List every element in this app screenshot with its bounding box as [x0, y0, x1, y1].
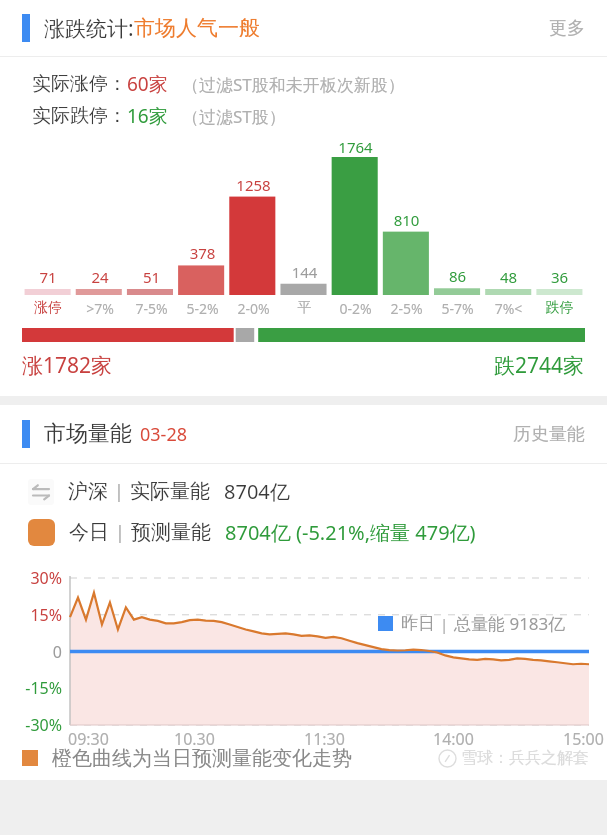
button[interactable]: 涨跌统计:	[0, 0, 607, 56]
staticText: 沪深	[68, 479, 108, 504]
staticText: 16家	[127, 103, 168, 129]
staticText: （过滤ST股和未开板次新股）	[182, 73, 405, 96]
staticText: 36	[534, 267, 585, 287]
button[interactable]: 实际量能图例	[0, 478, 607, 505]
staticText: 5-2%	[177, 299, 228, 318]
staticText: 8704亿 (-5.21%,缩量 479亿)	[225, 519, 476, 546]
staticText: -30%	[0, 714, 62, 736]
staticText: 今日	[69, 520, 109, 545]
staticText: 86	[432, 266, 483, 286]
staticText: 昨日	[401, 613, 435, 634]
staticText: 市场人气一般	[134, 15, 260, 41]
staticText: 8704亿	[224, 478, 290, 505]
staticText: 实际量能	[130, 479, 210, 504]
button[interactable]: 市场量能	[0, 405, 607, 463]
other: 预测量能图例	[28, 519, 55, 546]
staticText: 涨停	[22, 299, 74, 317]
staticText: 48	[483, 267, 534, 287]
button[interactable]: 预测量能图例	[0, 519, 607, 546]
staticText: 11:30	[304, 728, 345, 750]
staticText: 橙色曲线为当日预测量能变化走势	[52, 746, 352, 771]
staticText: 历史量能	[513, 423, 585, 446]
staticText: 跌2744家	[494, 351, 585, 380]
staticText: 0	[0, 641, 62, 663]
staticText: 378	[177, 243, 228, 263]
staticText: 30%	[0, 567, 62, 589]
staticText: 市场量能	[44, 420, 132, 448]
staticText: 60家	[127, 71, 168, 97]
staticText: 09:30	[68, 728, 109, 750]
staticText: 0-2%	[330, 299, 381, 318]
staticText: 5-7%	[432, 299, 483, 318]
staticText: 14:00	[433, 728, 474, 750]
staticText: 2-0%	[228, 299, 279, 318]
staticText: （过滤ST股）	[182, 105, 286, 128]
staticText: -15%	[0, 677, 62, 699]
staticText: 预测量能	[131, 520, 211, 545]
staticText: 15%	[0, 604, 62, 626]
staticText: 03-28	[140, 422, 187, 447]
staticText: 71	[22, 267, 74, 287]
staticText: 更多	[549, 17, 585, 40]
staticText: 1764	[330, 137, 381, 155]
staticText: 跌停	[534, 299, 585, 317]
staticText: 15:00	[563, 728, 604, 750]
staticText: 24	[74, 267, 126, 287]
staticText: 7%<	[483, 299, 534, 318]
staticText: 实际跌停：	[32, 104, 127, 128]
staticText: 10.30	[174, 728, 215, 750]
staticText: 51	[126, 267, 177, 287]
staticText: 810	[381, 210, 432, 230]
other: 实际量能图例	[28, 479, 54, 505]
staticText: 总量能 9183亿	[454, 612, 566, 635]
staticText: >7%	[74, 299, 126, 318]
staticText: 7-5%	[126, 299, 177, 318]
staticText: |	[115, 520, 125, 545]
staticText: 1258	[228, 175, 279, 195]
staticText: 144	[279, 262, 330, 282]
staticText: |	[114, 479, 124, 504]
staticText: 2-5%	[381, 299, 432, 318]
staticText: 涨跌统计:	[44, 14, 134, 43]
staticText: 雪球：兵兵之解套	[461, 748, 589, 768]
staticText: 涨1782家	[22, 351, 113, 380]
staticText: 平	[279, 299, 330, 317]
staticText: 实际涨停：	[32, 72, 127, 96]
staticText: |	[440, 614, 449, 634]
